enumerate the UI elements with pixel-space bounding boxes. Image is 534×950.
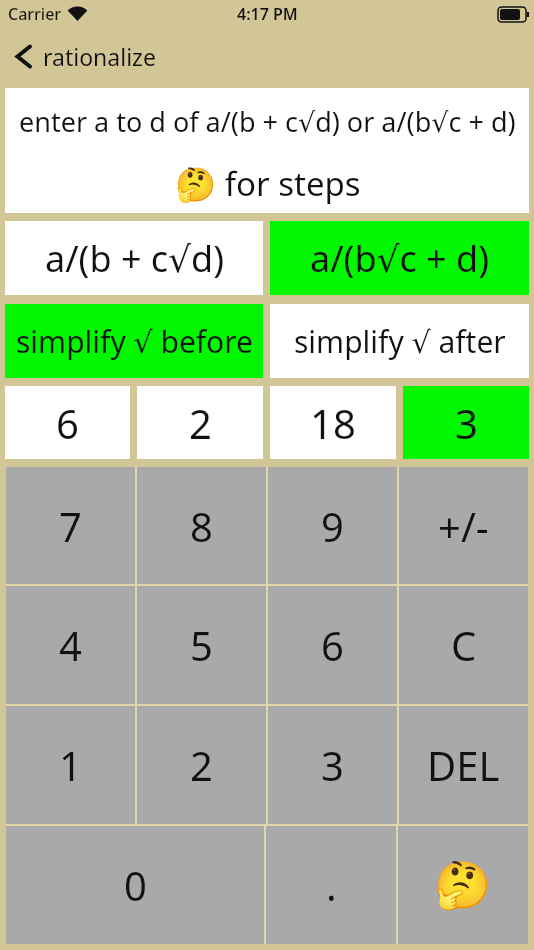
button[interactable]: +/-: [399, 467, 528, 584]
staticText: 0: [124, 858, 147, 912]
button[interactable]: 6: [5, 386, 130, 459]
staticText: C: [451, 618, 477, 672]
staticText: 2: [190, 738, 213, 792]
button[interactable]: 0: [6, 826, 264, 944]
staticText: 🤔 for steps: [175, 161, 361, 206]
button[interactable]: 9: [268, 467, 397, 584]
staticText: a/(b + c√d): [45, 234, 224, 283]
button[interactable]: 2: [137, 386, 263, 459]
button[interactable]: 3: [268, 706, 397, 824]
button[interactable]: DEL: [399, 706, 528, 824]
staticText: 6: [321, 618, 344, 672]
staticText: 3: [455, 396, 478, 450]
button[interactable]: [15, 45, 32, 68]
staticText: 18: [310, 396, 356, 450]
staticText: a/(b√c + d): [310, 234, 489, 283]
button[interactable]: a/(b + c√d): [5, 221, 263, 295]
button[interactable]: 2: [137, 706, 266, 824]
staticText: 4: [59, 618, 82, 672]
staticText: 4:17 PM: [237, 3, 298, 25]
staticText: +/-: [438, 499, 489, 553]
button[interactable]: simplify √ after: [270, 304, 529, 378]
staticText: simplify √ after: [294, 321, 506, 362]
staticText: 2: [189, 396, 212, 450]
staticText: 8: [190, 499, 213, 553]
staticText: 🤔: [434, 858, 492, 912]
staticText: 5: [190, 618, 213, 672]
staticText: 3: [321, 738, 344, 792]
button[interactable]: 4: [6, 586, 135, 704]
button[interactable]: 🤔: [398, 826, 528, 944]
staticText: DEL: [427, 738, 500, 792]
button[interactable]: 7: [6, 467, 135, 584]
button[interactable]: 5: [137, 586, 266, 704]
staticText: 7: [59, 499, 82, 553]
button[interactable]: enter a to d of a/(b + c√d) or a/(b√c + …: [5, 88, 529, 213]
button[interactable]: 8: [137, 467, 266, 584]
staticText: 1: [59, 738, 82, 792]
button[interactable]: 1: [6, 706, 135, 824]
staticText: simplify √ before: [16, 321, 253, 362]
staticText: .: [326, 858, 337, 912]
staticText: enter a to d of a/(b + c√d) or a/(b√c + …: [19, 103, 516, 140]
staticText: 6: [56, 396, 79, 450]
button[interactable]: 18: [270, 386, 396, 459]
button[interactable]: simplify √ before: [5, 304, 263, 378]
button[interactable]: 6: [268, 586, 397, 704]
button[interactable]: a/(b√c + d): [270, 221, 529, 295]
staticText: 9: [321, 499, 344, 553]
button[interactable]: C: [399, 586, 528, 704]
button[interactable]: .: [266, 826, 396, 944]
staticText: rationalize: [43, 41, 156, 72]
button[interactable]: 3: [403, 386, 529, 459]
staticText: Carrier: [8, 3, 62, 25]
